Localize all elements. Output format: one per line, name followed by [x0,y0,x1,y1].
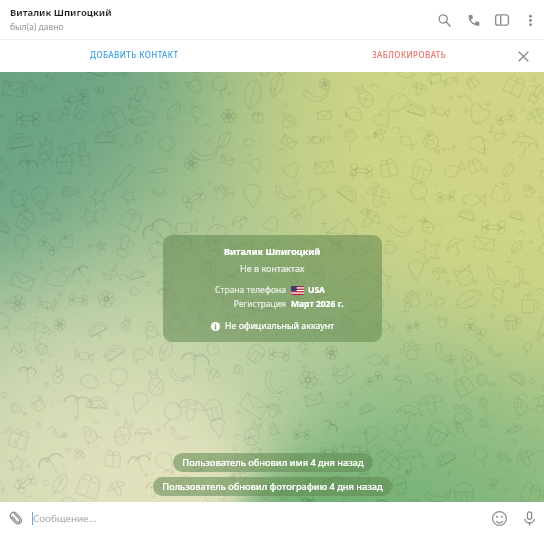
button[interactable]: Пользователь обновил имя 4 дня назад [173,453,373,472]
button[interactable]: Attach file [0,502,32,534]
staticText: Виталик Шпигоцкий [224,245,321,257]
button[interactable]: ЗАБЛОКИРОВАТЬ [364,43,455,66]
staticText: Сообщение... [33,512,97,525]
staticText: Регистрация [233,298,286,310]
button[interactable]: Call [459,6,487,34]
staticText: Не в контактах [240,262,305,274]
button[interactable]: Record voice message [514,503,544,533]
staticText: Виталик Шпигоцкий [10,6,112,19]
staticText: Март 2026 г. [291,298,344,310]
button[interactable]: ДОБАВИТЬ КОНТАКТ [82,43,187,66]
button[interactable]: Search [430,6,458,34]
staticText: USA [308,284,325,296]
button[interactable]: Split view [488,6,516,34]
staticText: Не официальный аккаунт [225,320,335,332]
staticText: Пользователь обновил фотографию 4 дня на… [162,480,383,493]
staticText: был(а) давно [10,21,64,33]
staticText: ДОБАВИТЬ КОНТАКТ [90,49,179,60]
staticText: Страна телефона [215,284,286,296]
button[interactable]: Пользователь обновил фотографию 4 дня на… [153,477,392,496]
button[interactable]: More options [516,6,544,34]
staticText: Пользователь обновил имя 4 дня назад [182,456,364,469]
staticText: ЗАБЛОКИРОВАТЬ [372,49,447,60]
button[interactable]: Close [510,43,536,69]
button[interactable]: Emoji [484,503,514,533]
